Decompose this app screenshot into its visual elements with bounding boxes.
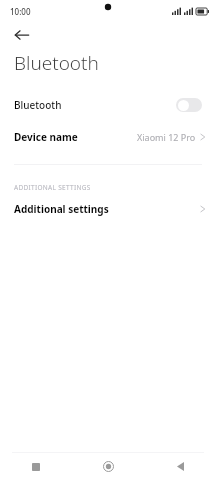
- button[interactable]: Back: [8, 22, 36, 48]
- staticText: Additional settings: [14, 202, 200, 216]
- button[interactable]: Additional settings: [0, 194, 216, 224]
- staticText: Xiaomi 12 Pro: [137, 131, 196, 143]
- button[interactable]: Home: [72, 453, 144, 480]
- staticText: Bluetooth: [14, 98, 176, 112]
- button[interactable]: Recents: [0, 453, 72, 480]
- staticText: ADDITIONAL SETTINGS: [14, 183, 91, 192]
- button[interactable]: Device name: [0, 122, 216, 152]
- staticText: 10:00: [10, 6, 31, 17]
- button[interactable]: Bluetooth: [0, 88, 216, 122]
- staticText: Device name: [14, 130, 137, 144]
- button[interactable]: Back: [144, 453, 216, 480]
- staticText: Bluetooth: [14, 50, 99, 76]
